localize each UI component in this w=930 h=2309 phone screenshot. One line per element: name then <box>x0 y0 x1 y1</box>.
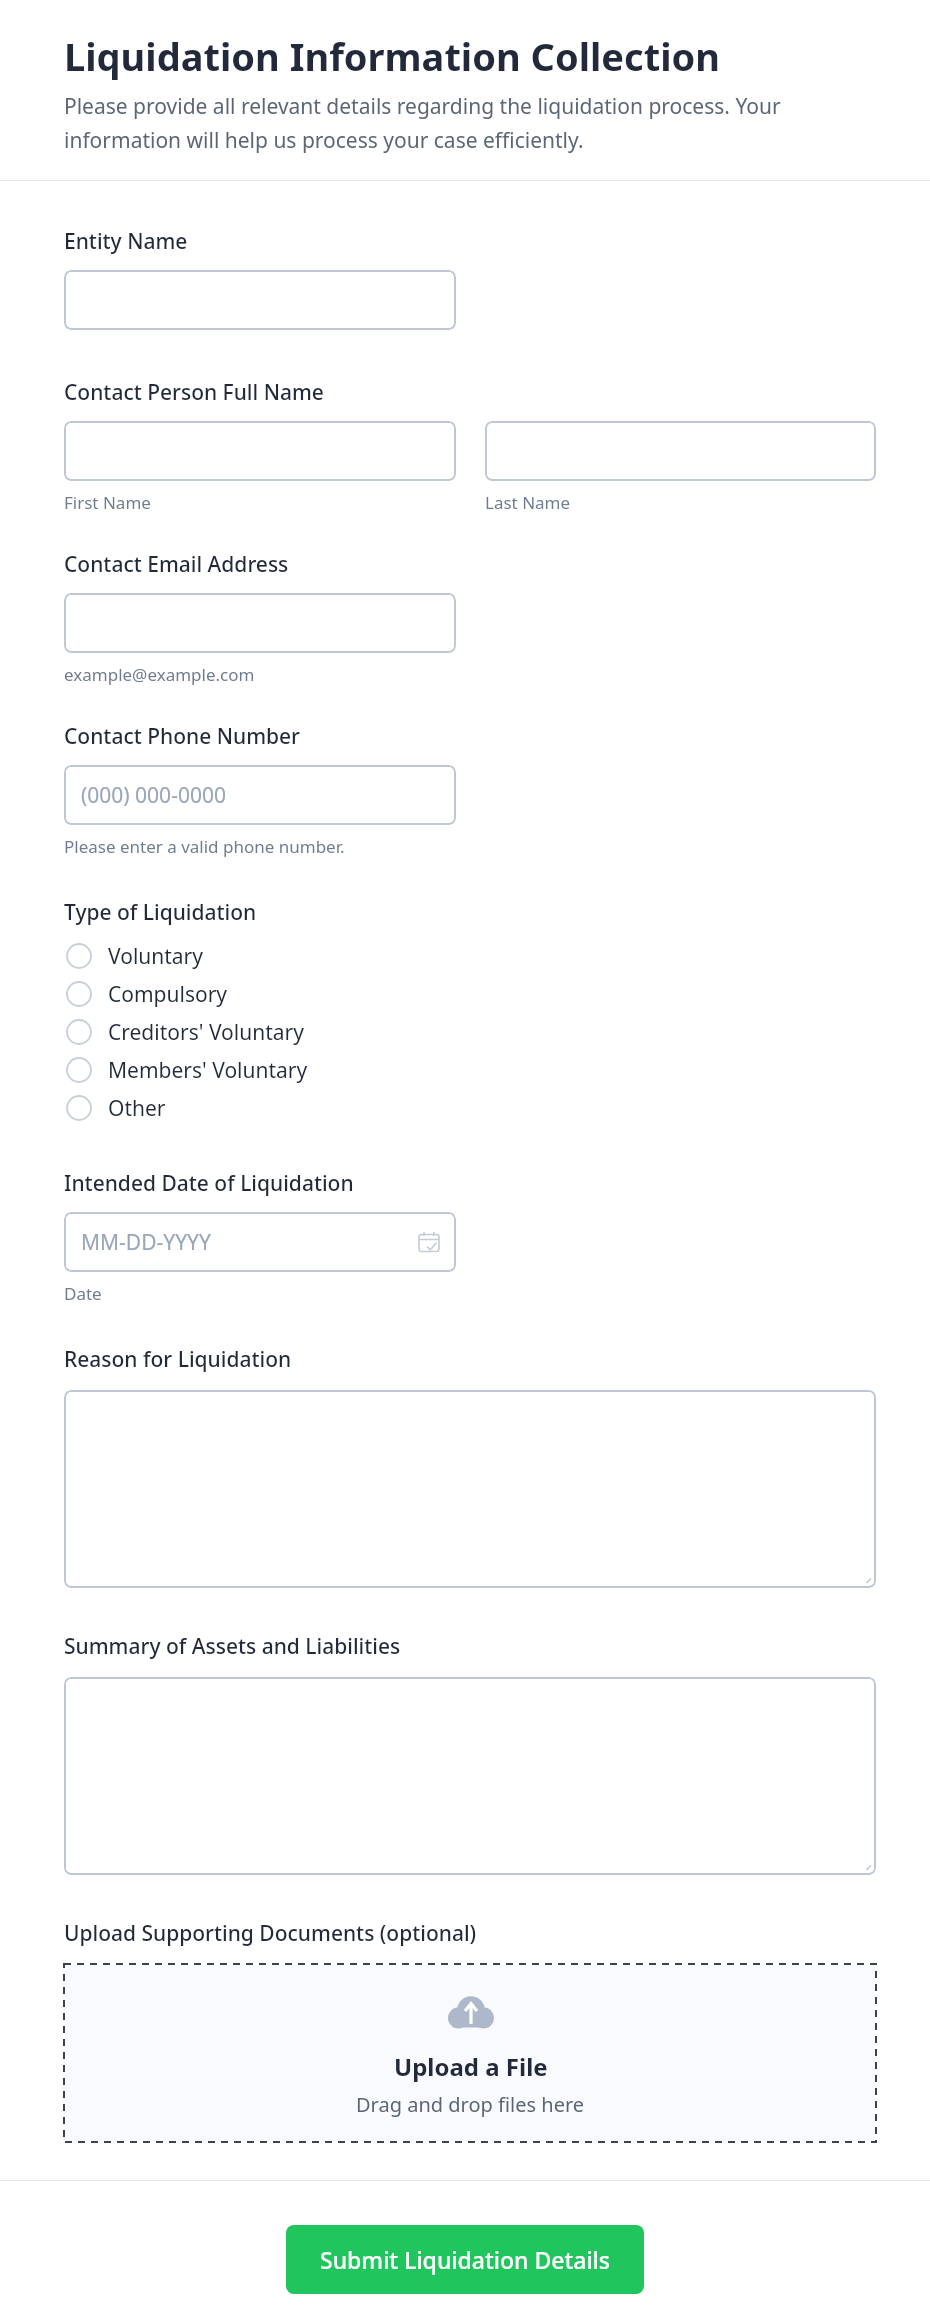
staticText: Voluntary <box>108 942 204 971</box>
staticText: Submit Liquidation Details <box>320 2244 610 2275</box>
button[interactable]: Compulsory <box>64 975 484 1013</box>
staticText: MM-DD-YYYY <box>81 1228 211 1257</box>
button[interactable]: Reason for Liquidation <box>64 1390 876 1588</box>
staticText: Upload a File <box>394 2050 548 2083</box>
button[interactable]: First Name <box>64 421 456 481</box>
button[interactable]: Last Name <box>485 421 876 481</box>
staticText: First Name <box>64 491 151 514</box>
staticText: Other <box>108 1094 166 1123</box>
button[interactable]: Contact Phone Number <box>64 765 456 825</box>
staticText: Creditors' Voluntary <box>108 1018 304 1047</box>
staticText: Intended Date of Liquidation <box>64 1169 354 1198</box>
staticText: (000) 000-0000 <box>81 781 226 810</box>
button[interactable]: Members' Voluntary <box>64 1051 484 1089</box>
button[interactable]: Other <box>64 1089 484 1127</box>
staticText: Please enter a valid phone number. <box>64 835 345 858</box>
button[interactable]: Contact Email Address <box>64 593 456 653</box>
staticText: Type of Liquidation <box>64 898 257 927</box>
staticText: Compulsory <box>108 980 228 1009</box>
staticText: Members' Voluntary <box>108 1056 308 1085</box>
staticText: Contact Email Address <box>64 550 289 579</box>
staticText: Upload Supporting Documents (optional) <box>64 1919 477 1948</box>
button[interactable]: Submit Liquidation Details <box>286 2225 644 2294</box>
button[interactable]: Intended Date of Liquidation <box>64 1212 456 1272</box>
button[interactable]: Voluntary <box>64 937 484 975</box>
staticText: example@example.com <box>64 663 255 686</box>
button[interactable]: Summary of Assets and Liabilities <box>64 1677 876 1875</box>
staticText: Summary of Assets and Liabilities <box>64 1632 401 1661</box>
staticText: Entity Name <box>64 227 188 256</box>
staticText: Contact Phone Number <box>64 722 300 751</box>
staticText: Reason for Liquidation <box>64 1345 292 1374</box>
staticText: Contact Person Full Name <box>64 378 324 407</box>
button[interactable]: Entity Name <box>64 270 456 330</box>
staticText: Liquidation Information Collection <box>64 30 720 82</box>
staticText: Last Name <box>485 491 571 514</box>
button[interactable]: Upload a File <box>64 1964 876 2142</box>
button[interactable]: Creditors' Voluntary <box>64 1013 484 1051</box>
staticText: Drag and drop files here <box>356 2091 585 2118</box>
staticText: Date <box>64 1282 102 1305</box>
staticText: Please provide all relevant details rega… <box>64 92 880 154</box>
